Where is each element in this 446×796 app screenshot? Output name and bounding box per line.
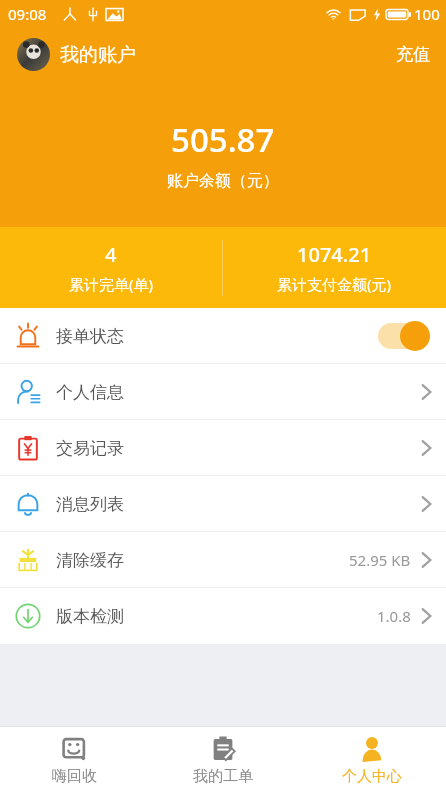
button[interactable]: 我的工单 [148, 726, 297, 796]
staticText: 100 [414, 4, 440, 24]
staticText: 我的工单 [193, 767, 253, 786]
staticText: 清除缓存 [56, 550, 124, 571]
staticText: 1.0.8 [377, 606, 411, 626]
button[interactable]: 接单状态 [0, 308, 446, 364]
button[interactable]: 清除缓存 [0, 532, 446, 588]
button[interactable]: 4 [0, 241, 222, 294]
button[interactable]: 消息列表 [0, 476, 446, 532]
staticText: 我的账户 [60, 43, 136, 67]
staticText: 账户余额（元） [167, 171, 279, 191]
button[interactable]: 个人信息 [0, 364, 446, 420]
staticText: 1074.21 [297, 241, 372, 268]
staticText: 个人信息 [56, 382, 124, 403]
button[interactable]: 我的账户 [17, 38, 136, 71]
staticText: 4 [105, 241, 117, 268]
button[interactable]: 个人中心 [297, 726, 446, 796]
staticText: 累计完单(单) [69, 274, 154, 294]
staticText: 累计支付金额(元) [277, 274, 392, 294]
staticText: 个人中心 [342, 767, 402, 786]
staticText: 505.87 [171, 117, 275, 162]
staticText: 嗨回收 [52, 767, 97, 786]
staticText: 52.95 KB [349, 550, 411, 570]
staticText: 消息列表 [56, 494, 124, 515]
button[interactable]: 交易记录 [0, 420, 446, 476]
staticText: 交易记录 [56, 438, 124, 459]
button[interactable]: 嗨回收 [0, 726, 148, 796]
button[interactable]: 1074.21 [223, 241, 446, 294]
staticText: 接单状态 [56, 326, 124, 347]
staticText: 09:08 [8, 4, 47, 24]
staticText: 版本检测 [56, 606, 124, 627]
button[interactable]: 充值 [380, 36, 446, 73]
staticText: 充值 [396, 44, 430, 65]
button[interactable]: 版本检测 [0, 588, 446, 644]
